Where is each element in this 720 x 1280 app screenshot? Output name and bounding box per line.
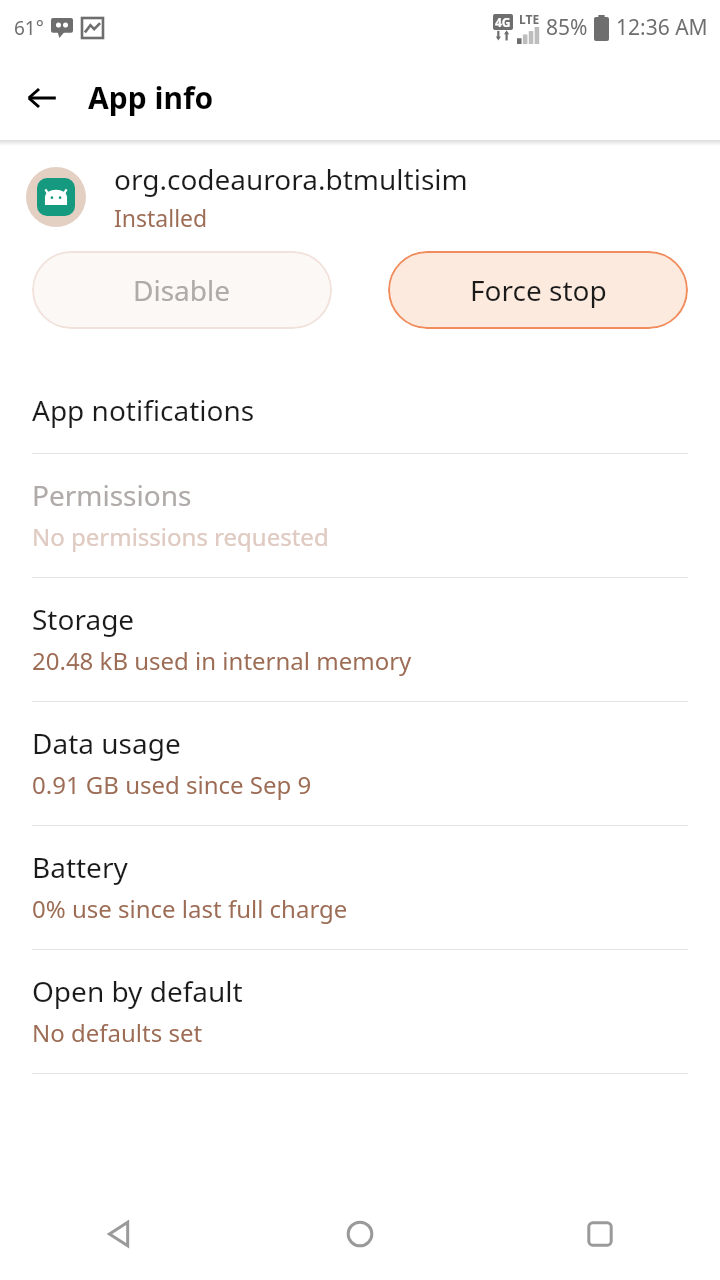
staticText: LTE bbox=[519, 11, 540, 27]
button[interactable]: App notifications bbox=[0, 369, 720, 453]
button[interactable]: Storage bbox=[0, 578, 720, 701]
staticText: 0% use since last full charge bbox=[32, 892, 348, 925]
button[interactable]: Open by default bbox=[0, 950, 720, 1073]
staticText: No permissions requested bbox=[32, 520, 329, 553]
staticText: Force stop bbox=[470, 271, 607, 309]
button[interactable]: Back bbox=[14, 70, 70, 126]
staticText: App info bbox=[88, 77, 214, 118]
button[interactable]: Permissions bbox=[0, 454, 720, 577]
button[interactable]: Home bbox=[240, 1188, 480, 1280]
staticText: org.codeaurora.btmultisim bbox=[114, 160, 468, 198]
button[interactable]: Back bbox=[0, 1188, 240, 1280]
button[interactable]: Disable bbox=[32, 251, 332, 329]
staticText: Open by default bbox=[32, 972, 243, 1010]
button[interactable]: Battery bbox=[0, 826, 720, 949]
button[interactable]: Data usage bbox=[0, 702, 720, 825]
staticText: 4G bbox=[495, 14, 511, 30]
staticText: 20.48 kB used in internal memory bbox=[32, 644, 412, 677]
staticText: Installed bbox=[114, 202, 208, 233]
staticText: App notifications bbox=[32, 391, 255, 429]
staticText: Permissions bbox=[32, 476, 192, 514]
staticText: No defaults set bbox=[32, 1016, 203, 1049]
button[interactable]: Recents bbox=[480, 1188, 720, 1280]
staticText: 12:36 AM bbox=[616, 13, 708, 42]
staticText: Data usage bbox=[32, 724, 181, 762]
button[interactable]: Force stop bbox=[388, 251, 688, 329]
staticText: 61° bbox=[14, 15, 44, 41]
staticText: Battery bbox=[32, 848, 128, 886]
staticText: 0.91 GB used since Sep 9 bbox=[32, 768, 312, 801]
staticText: Disable bbox=[133, 271, 231, 309]
staticText: Storage bbox=[32, 600, 135, 638]
staticText: 85% bbox=[546, 13, 588, 42]
